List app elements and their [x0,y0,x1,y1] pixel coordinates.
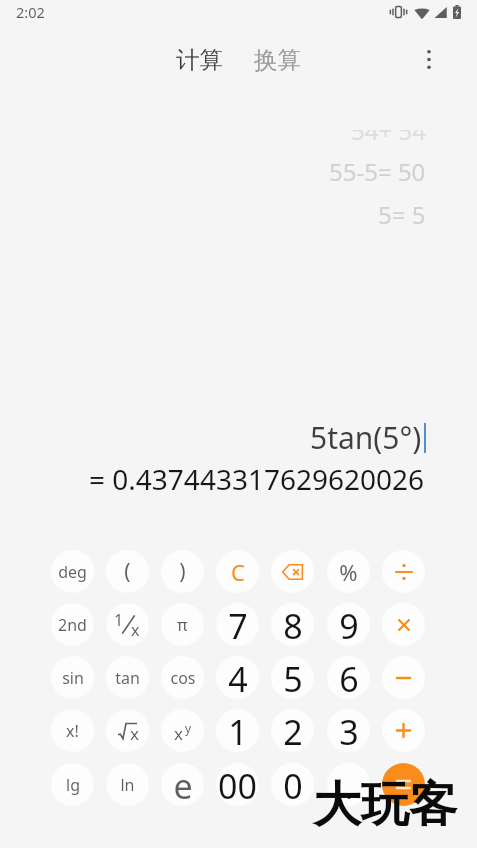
button[interactable]: C [216,550,259,593]
staticText: tan [115,667,140,689]
button[interactable]: 5 [271,656,314,699]
staticText: 换算 [254,45,301,75]
button[interactable]: ( [106,550,149,593]
staticText: 54+ 54 [351,130,426,147]
button[interactable]: ) [161,550,204,593]
staticText: 7 [228,603,248,646]
button[interactable]: Pi [161,603,204,646]
staticText: % [339,557,358,587]
button[interactable]: 2nd [51,603,94,646]
button[interactable]: Plus [382,709,425,752]
button[interactable]: 1 [216,709,259,752]
staticText: ( [124,557,131,586]
staticText: 3 [339,709,359,752]
staticText: x! [66,720,79,742]
button[interactable]: Divide [382,550,425,593]
button[interactable]: 0 [271,763,314,806]
staticText: 2 [283,709,303,752]
staticText: x [174,722,183,745]
staticText: 00 [218,763,257,806]
staticText: 1 [228,709,248,752]
staticText: . [344,763,354,806]
button[interactable]: Delete [271,550,314,593]
staticText: ln [120,774,135,796]
button[interactable]: Square root [106,709,149,752]
button[interactable]: Reciprocal [106,603,149,646]
staticText: 2:02 [16,2,45,22]
button[interactable]: 换算 [246,37,309,83]
button[interactable]: 6 [327,656,370,699]
button[interactable]: More options [407,37,451,81]
button[interactable]: e [161,763,204,806]
staticText: 1 [114,609,124,631]
button[interactable]: 7 [216,603,259,646]
button[interactable]: 3 [327,709,370,752]
staticText: C [231,557,245,587]
staticText: 计算 [176,45,223,75]
staticText: 6 [339,656,359,699]
button[interactable]: % [327,550,370,593]
button[interactable]: Equals [382,763,425,806]
staticText: deg [58,561,87,583]
staticText: π [177,614,188,636]
button[interactable]: 4 [216,656,259,699]
staticText: sin [62,667,84,689]
button[interactable]: cos [161,656,204,699]
button[interactable]: sin [51,656,94,699]
staticText: 9 [339,603,359,646]
button[interactable]: tan [106,656,149,699]
staticText: = 0.437443317629620026 [89,460,425,498]
button[interactable]: ln [106,763,149,806]
button[interactable]: Power [161,709,204,752]
button[interactable]: Multiply [382,603,425,646]
button[interactable]: x! [51,709,94,752]
staticText: lg [66,774,80,796]
button[interactable]: deg [51,550,94,593]
staticText: y [185,720,192,736]
staticText: cos [170,667,196,689]
button[interactable]: . [327,763,370,806]
staticText: 5= 5 [378,198,426,231]
staticText: 大玩客 [313,775,457,835]
staticText: x [131,619,140,641]
staticText: ) [179,557,186,586]
staticText: 5 [283,656,303,699]
button[interactable]: 00 [216,763,259,806]
staticText: 5tan(5°) [310,417,422,458]
button[interactable]: lg [51,763,94,806]
button[interactable]: 8 [271,603,314,646]
staticText: 2nd [58,614,87,636]
staticText: e [173,763,193,806]
staticText: 0 [283,763,303,806]
button[interactable]: 9 [327,603,370,646]
button[interactable]: Minus [382,656,425,699]
staticText: 55-5= 50 [329,155,426,188]
button[interactable]: 计算 [168,37,231,83]
staticText: x [130,722,139,745]
staticText: 8 [283,603,303,646]
button[interactable]: 2 [271,709,314,752]
staticText: 4 [228,656,248,699]
